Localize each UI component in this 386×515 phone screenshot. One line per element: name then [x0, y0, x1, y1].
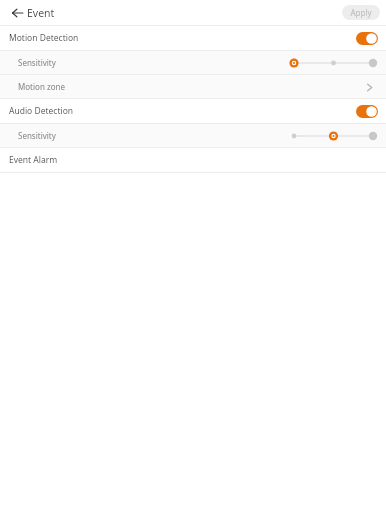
staticText: Sensitivity: [18, 57, 56, 68]
button[interactable]: Sensitivity: [0, 51, 386, 74]
staticText: Motion zone: [18, 81, 65, 92]
button[interactable]: Sensitivity slider: [290, 128, 378, 144]
staticText: Sensitivity: [18, 130, 56, 141]
button[interactable]: Back: [6, 2, 28, 24]
staticText: Motion Detection: [9, 32, 79, 44]
button[interactable]: Sensitivity: [0, 124, 386, 147]
button[interactable]: Apply: [342, 5, 380, 20]
button[interactable]: Motion zone: [0, 75, 386, 98]
button[interactable]: Audio Detection: [0, 99, 386, 123]
button[interactable]: Sensitivity slider: [290, 55, 378, 71]
staticText: Apply: [350, 7, 372, 18]
button[interactable]: Motion Detection: [0, 26, 386, 50]
button[interactable]: Audio Detection toggle: [356, 105, 378, 118]
staticText: Event: [27, 6, 55, 20]
other: Open motion zone: [362, 80, 376, 94]
staticText: Event Alarm: [9, 154, 58, 166]
button[interactable]: Event Alarm: [0, 148, 386, 172]
staticText: Audio Detection: [9, 105, 74, 117]
button[interactable]: Motion Detection toggle: [356, 32, 378, 45]
